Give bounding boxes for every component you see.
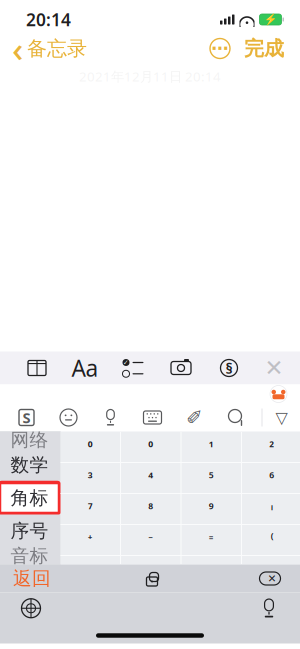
button[interactable]: 序号 (0, 514, 60, 547)
staticText: ‹ (12, 25, 23, 71)
staticText: ² (269, 438, 274, 456)
button[interactable]: 网络 (0, 431, 60, 448)
button[interactable]: 角标 (0, 481, 60, 514)
button[interactable]: ⁽ (242, 525, 300, 555)
staticText: ⁼ (209, 531, 214, 549)
button[interactable]: ⁹ (181, 494, 241, 524)
staticText: ⁶ (269, 469, 274, 487)
button[interactable]: 收起 (262, 403, 300, 431)
button[interactable]: ⁺ (60, 525, 120, 555)
button[interactable]: 音标 (0, 547, 60, 564)
button[interactable]: ³ (60, 463, 120, 493)
button[interactable]: 关闭 (257, 351, 291, 384)
staticText: S (22, 408, 30, 427)
button[interactable]: 清单 (113, 351, 153, 384)
staticText: ⁰ (88, 438, 93, 456)
button[interactable]: ⁷ (60, 494, 120, 524)
staticText: ⁷ (88, 500, 93, 518)
button[interactable]: 搜狗输入法 (9, 403, 43, 431)
button[interactable]: 表情 (51, 403, 85, 431)
staticText: 20:14 (26, 8, 71, 31)
button[interactable]: ⁸ (121, 494, 180, 524)
button[interactable]: ⁻ (121, 525, 180, 555)
staticText: 完成 (244, 36, 284, 61)
button[interactable]: ⁵ (181, 463, 241, 493)
button[interactable]: 手写 (177, 403, 211, 431)
button[interactable]: 皮肤 (269, 384, 300, 403)
button[interactable]: ‹ (0, 21, 87, 75)
button[interactable]: ¹ (181, 432, 241, 462)
button[interactable]: ⁱ (242, 494, 300, 524)
staticText: 网络 (10, 428, 48, 451)
staticText: ✓ (123, 359, 129, 366)
staticText: ⁹ (209, 500, 214, 518)
button[interactable]: ⁶ (242, 463, 300, 493)
staticText: ⋯ (211, 39, 228, 58)
staticText: ⁽ (270, 531, 273, 549)
button[interactable]: 锁定 (132, 564, 172, 592)
staticText: 备忘录 (27, 36, 87, 61)
button[interactable]: 搜索 (219, 403, 253, 431)
staticText: ⁴ (148, 469, 153, 487)
staticText: ✐ (186, 406, 203, 429)
button[interactable]: 更多 (206, 34, 234, 62)
staticText: ⁸ (148, 500, 153, 518)
button[interactable]: ⁰ (60, 432, 120, 462)
button[interactable]: 表格 (17, 351, 57, 384)
button[interactable]: 返回 (8, 564, 56, 592)
staticText: ▽ (275, 408, 287, 427)
button[interactable]: 听写 (247, 591, 291, 625)
staticText: 返回 (13, 567, 51, 590)
staticText: ✕ (267, 572, 276, 584)
staticText: 数学 (10, 453, 48, 476)
staticText: Aa (71, 353, 98, 383)
staticText: ³ (88, 469, 93, 487)
button[interactable]: ⁼ (181, 525, 241, 555)
staticText: ⁰ (148, 438, 153, 456)
staticText: ⚡ (264, 13, 277, 26)
staticText: 音标 (10, 544, 48, 567)
staticText: ¹ (209, 438, 214, 456)
button[interactable]: 键盘设置 (135, 403, 169, 431)
staticText: ⁻ (148, 531, 153, 549)
button[interactable]: 切换键盘 (9, 591, 53, 625)
button[interactable]: 标记 (209, 351, 249, 384)
button[interactable]: 相机 (161, 351, 201, 384)
staticText: ✕ (264, 355, 283, 381)
button[interactable]: ⁰ (121, 432, 180, 462)
staticText: ⁱ (271, 500, 273, 518)
staticText: ⁺ (88, 531, 93, 549)
staticText: 角标 (10, 486, 48, 509)
staticText: ⁵ (209, 469, 214, 487)
button[interactable]: 完成 (234, 32, 294, 65)
button[interactable]: 数学 (0, 448, 60, 481)
button[interactable]: ⁴ (121, 463, 180, 493)
staticText: 序号 (10, 519, 48, 542)
button[interactable]: 语音输入 (93, 403, 127, 431)
button[interactable]: 删除 (248, 564, 292, 592)
staticText: § (225, 358, 232, 378)
button[interactable]: ² (242, 432, 300, 462)
button[interactable]: 格式 (65, 351, 105, 384)
